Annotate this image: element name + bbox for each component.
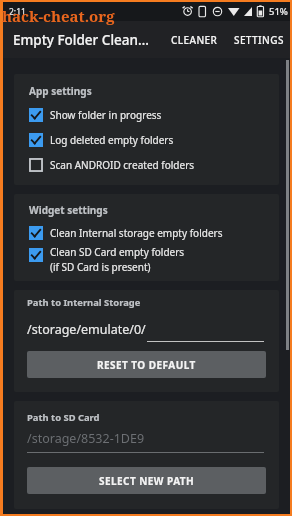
staticText: Clean SD Card empty folders [50,245,185,259]
staticText: 2:11 [9,6,26,18]
staticText: Empty Folder Clean… [13,31,149,49]
staticText: Widget settings [29,203,108,217]
button[interactable]: Log deleted empty folders [14,127,279,152]
button[interactable]: Show folder in progress [14,102,279,127]
staticText: hack-cheat.org [2,6,115,26]
staticText: CLEANER [171,33,218,47]
staticText: Path to Internal Storage [27,296,141,309]
staticText: Scan ANDROID created folders [50,158,195,172]
staticText: (if SD Card is present) [50,260,151,274]
button[interactable]: SETTINGS [230,25,290,55]
button[interactable]: Scan ANDROID created folders [14,152,279,177]
button[interactable]: RESET TO DEFAULT [27,351,266,378]
staticText: 51% [269,5,288,18]
staticText: RESET TO DEFAULT [97,358,196,372]
button[interactable]: Clean Internal storage empty folders [14,220,279,245]
staticText: Log deleted empty folders [50,133,174,147]
staticText: Show folder in progress [50,108,162,122]
staticText: /storage/8532-1DE9 [27,430,145,447]
staticText: /storage/emulate/0/ [27,321,146,338]
staticText: SELECT NEW PATH [99,474,195,488]
button[interactable]: CLEANER [167,25,222,55]
staticText: Clean Internal storage empty folders [50,226,223,240]
button[interactable]: Clean SD Card empty folders [14,245,279,275]
staticText: Path to SD Card [27,411,100,424]
staticText: App settings [29,84,92,98]
staticText: SETTINGS [234,33,284,47]
button[interactable]: SELECT NEW PATH [27,467,266,494]
